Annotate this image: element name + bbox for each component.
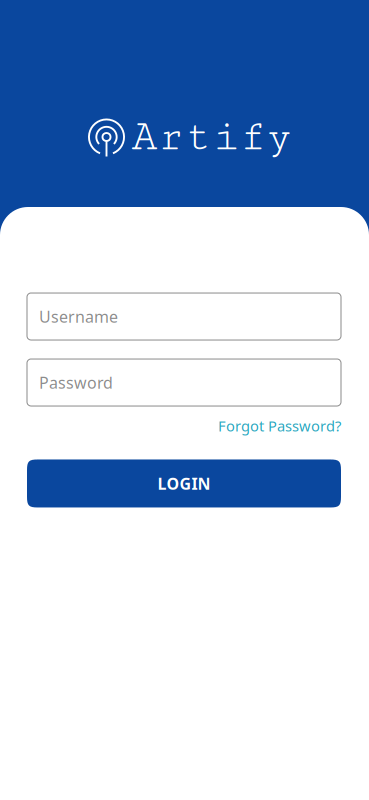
button[interactable]: LOGIN <box>27 459 341 507</box>
staticText: Password <box>39 372 113 393</box>
staticText: Artify <box>131 113 293 161</box>
staticText: Forgot Password? <box>218 416 341 435</box>
button[interactable]: Password <box>27 359 341 406</box>
staticText: Username <box>39 306 118 327</box>
button[interactable]: Username <box>27 293 341 340</box>
button[interactable]: Forgot Password? <box>218 416 341 435</box>
staticText: LOGIN <box>157 473 210 494</box>
